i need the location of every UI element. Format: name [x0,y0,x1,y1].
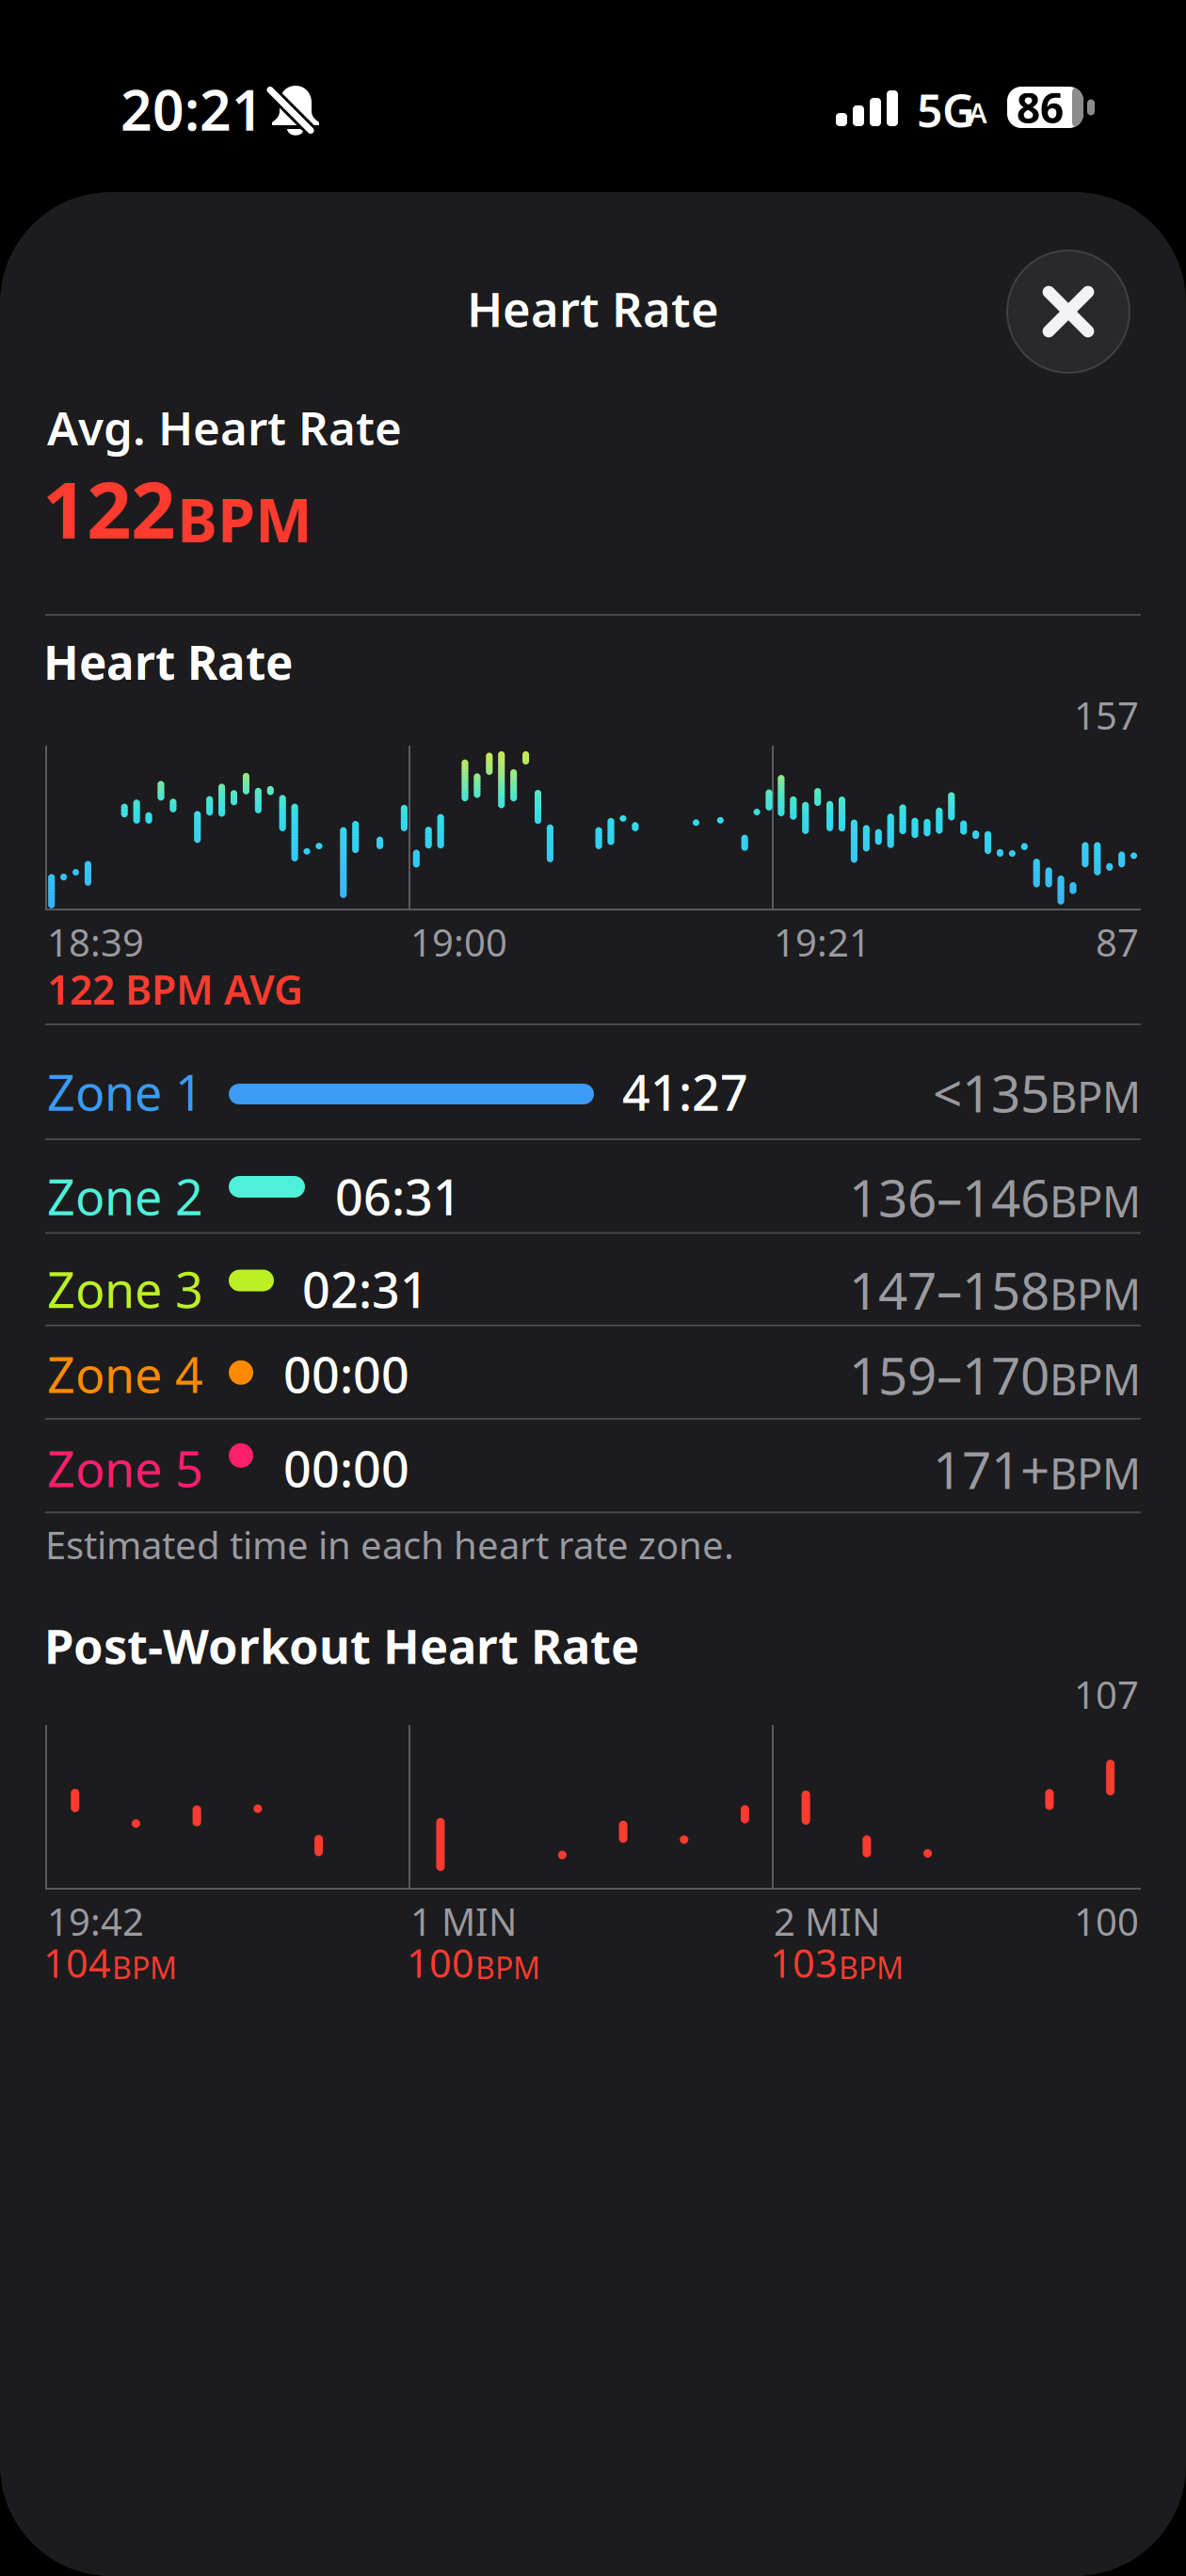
staticText: 107 [1074,1669,1139,1719]
staticText: 100 [407,1937,474,1988]
staticText: 122 [42,457,175,560]
staticText: Avg. Heart Rate [47,396,402,458]
staticText: Zone 5 [47,1436,203,1501]
staticText: BPM [1050,1265,1141,1322]
staticText: 19:21 [774,917,871,967]
staticText: 06:31 [335,1164,461,1229]
staticText: 171+ [933,1435,1050,1503]
button[interactable]: Zone 5 [45,1420,1141,1513]
staticText: BPM [1050,1350,1141,1407]
staticText: 00:00 [283,1436,409,1501]
button[interactable]: Zone 3 [45,1234,1141,1326]
staticText: 41:27 [622,1059,748,1124]
staticText: 104 [43,1937,111,1988]
staticText: 18:39 [47,917,144,967]
staticText: 19:00 [410,917,507,967]
staticText: 122 BPM AVG [47,962,303,1016]
staticText: Zone 3 [47,1256,203,1322]
staticText: BPM [1050,1173,1141,1229]
button[interactable]: Close [1007,250,1130,373]
staticText: 159–170 [849,1341,1050,1409]
staticText: Zone 4 [47,1341,203,1407]
staticText: 5G [917,80,975,140]
staticText: BPM [112,1947,177,1987]
staticText: 87 [1096,917,1139,967]
staticText: BPM [839,1947,904,1987]
button[interactable]: Zone 2 [45,1140,1141,1234]
staticText: BPM [177,479,312,559]
staticText: 103 [770,1937,838,1988]
staticText: Zone 2 [47,1164,203,1229]
staticText: 1 MIN [410,1896,517,1946]
staticText: 19:42 [47,1896,144,1946]
button[interactable]: Zone 4 [45,1326,1141,1420]
staticText: Heart Rate [467,277,719,340]
staticText: BPM [1050,1068,1141,1125]
staticText: Post-Workout Heart Rate [44,1614,639,1677]
staticText: A [969,94,987,131]
button[interactable]: Zone 1 [45,1024,1141,1140]
staticText: 100 [1074,1896,1139,1946]
staticText: Estimated time in each heart rate zone. [45,1520,734,1570]
staticText: BPM [475,1947,540,1987]
staticText: BPM [1050,1445,1141,1501]
staticText: 2 MIN [774,1896,880,1946]
staticText: 136–146 [849,1163,1050,1231]
staticText: 157 [1074,690,1139,740]
staticText: 86 [1017,80,1064,135]
staticText: 20:21 [120,72,264,146]
staticText: Heart Rate [43,631,293,692]
staticText: 147–158 [849,1256,1050,1324]
staticText: 00:00 [283,1341,409,1407]
staticText: <135 [933,1058,1050,1127]
staticText: Zone 1 [47,1059,203,1124]
staticText: 02:31 [302,1256,428,1322]
